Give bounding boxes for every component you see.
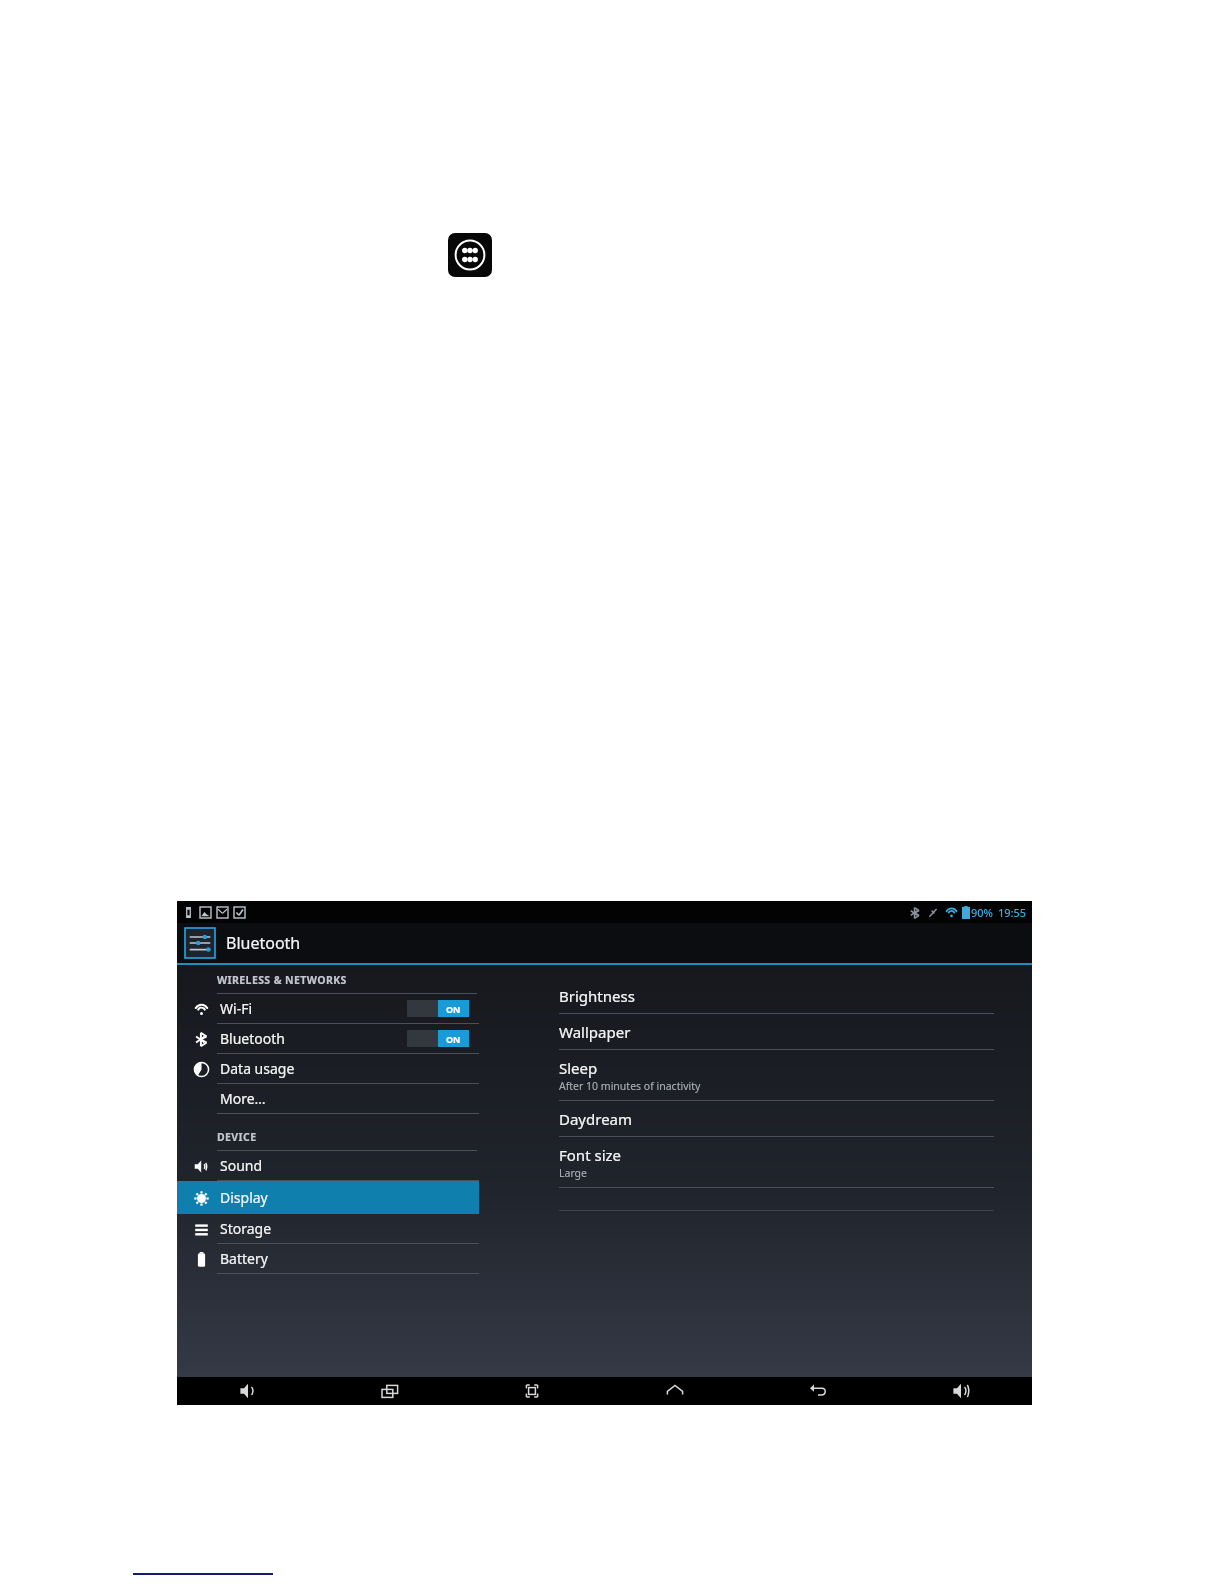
button[interactable]: Brightness bbox=[559, 978, 994, 1014]
staticText: Bluetooth bbox=[220, 1029, 285, 1048]
button[interactable]: Font size bbox=[559, 1137, 994, 1188]
staticText: Storage bbox=[220, 1219, 272, 1238]
button[interactable]: Bluetooth bbox=[177, 923, 1032, 963]
staticText: Display bbox=[220, 1188, 268, 1207]
staticText: WIRELESS & NETWORKS bbox=[217, 973, 347, 987]
staticText: Daydream bbox=[559, 1109, 633, 1129]
staticText: ON bbox=[446, 1003, 461, 1015]
button[interactable]: Volume up bbox=[889, 1377, 1032, 1405]
button[interactable]: Wi-Fi bbox=[177, 994, 479, 1023]
button[interactable]: Display bbox=[177, 1181, 479, 1214]
button[interactable]: Home bbox=[603, 1377, 746, 1405]
button[interactable]: Sound bbox=[177, 1151, 479, 1180]
button[interactable]: Battery bbox=[177, 1244, 479, 1273]
button[interactable]: Recents bbox=[319, 1377, 461, 1405]
staticText: 90% bbox=[971, 905, 993, 920]
button[interactable]: Data usage bbox=[177, 1054, 479, 1083]
button[interactable]: Storage bbox=[177, 1214, 479, 1243]
button[interactable]: Sleep bbox=[559, 1050, 994, 1101]
button[interactable]: Daydream bbox=[559, 1101, 994, 1137]
staticText: Wallpaper bbox=[559, 1022, 631, 1042]
button[interactable]: ON bbox=[407, 1000, 469, 1017]
staticText: Sound bbox=[220, 1156, 263, 1175]
staticText: After 10 minutes of inactivity bbox=[559, 1079, 701, 1093]
staticText: Data usage bbox=[220, 1059, 295, 1078]
staticText: Sleep bbox=[559, 1058, 598, 1078]
staticText: DEVICE bbox=[217, 1130, 257, 1144]
button[interactable]: Wallpaper bbox=[559, 1014, 994, 1050]
staticText: Wi-Fi bbox=[220, 999, 253, 1018]
button[interactable]: More… bbox=[177, 1084, 479, 1113]
staticText: ON bbox=[446, 1033, 461, 1045]
button[interactable]: Apps bbox=[448, 233, 492, 277]
staticText: Battery bbox=[220, 1249, 268, 1268]
button[interactable]: ON bbox=[407, 1030, 469, 1047]
staticText: Bluetooth bbox=[226, 932, 301, 954]
button[interactable]: Volume down bbox=[177, 1377, 319, 1405]
button[interactable]: Bluetooth bbox=[177, 1024, 479, 1053]
button[interactable]: Screenshot bbox=[461, 1377, 603, 1405]
staticText: Large bbox=[559, 1166, 588, 1180]
staticText: Font size bbox=[559, 1145, 622, 1165]
staticText: Brightness bbox=[559, 986, 635, 1006]
button[interactable]: Back bbox=[746, 1377, 889, 1405]
staticText: 19:55 bbox=[998, 905, 1027, 920]
staticText: More… bbox=[220, 1089, 266, 1108]
